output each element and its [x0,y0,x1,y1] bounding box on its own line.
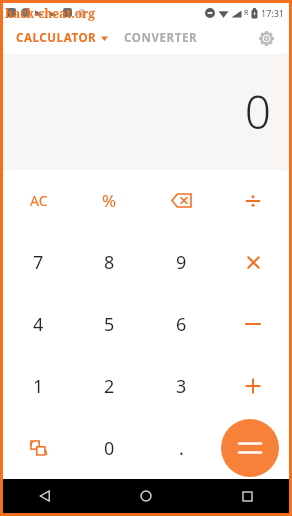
button[interactable]: Minus [217,293,289,355]
button[interactable] [217,170,289,231]
staticText: % [102,189,117,212]
button[interactable]: Home [132,482,160,510]
button[interactable]: 1 [3,355,74,417]
button[interactable]: Settings [252,24,280,52]
staticText: 6 [176,312,187,337]
staticText: 17:31 [261,7,285,19]
button[interactable]: AC [3,170,74,231]
staticText: 4 [33,312,44,337]
button[interactable]: Back [31,482,59,510]
button[interactable]: . [145,417,217,479]
button[interactable]: 3 [145,355,217,417]
staticText: CALCULATOR [16,30,97,46]
button[interactable]: 4 [3,293,74,355]
button[interactable]: Equals [221,419,279,477]
button[interactable]: 5 [74,293,145,355]
staticText: CONVERTER [124,30,198,46]
button[interactable]: 8 [74,231,145,293]
staticText: R [244,8,249,18]
button[interactable]: Plus [217,355,289,417]
button[interactable]: 0 [74,417,145,479]
staticText: 0 [244,80,271,143]
button[interactable]: History [3,417,74,479]
staticText: 8 [104,250,115,275]
button[interactable]: Equals [217,417,289,479]
staticText: . [179,436,184,461]
staticText: AC [30,191,48,210]
button[interactable]: CALCULATOR [16,26,108,50]
staticText: 7 [33,250,44,275]
staticText: 3 [176,374,187,399]
staticText: 2 [104,374,115,399]
button[interactable]: 2 [74,355,145,417]
button[interactable]: 7 [3,231,74,293]
button[interactable]: 6 [145,293,217,355]
staticText: 0 [104,436,115,461]
staticText: 1 [33,374,44,399]
button[interactable]: Backspace [145,170,217,231]
staticText: 5 [104,312,115,337]
button[interactable]: Recents [233,482,261,510]
staticText: hack-cheat.org [5,5,96,21]
staticText: 9 [176,250,187,275]
button[interactable]: % [74,170,145,231]
button[interactable]: Multiply [217,231,289,293]
button[interactable]: 9 [145,231,217,293]
button[interactable]: CONVERTER [124,26,198,50]
